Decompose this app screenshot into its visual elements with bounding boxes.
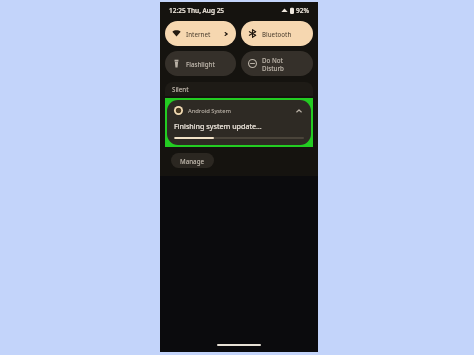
staticText: Flashlight: [186, 60, 215, 68]
button[interactable]: Flashlight: [165, 51, 236, 76]
staticText: Bluetooth: [262, 30, 292, 38]
staticText: 12:25 Thu, Aug 25: [169, 6, 225, 15]
staticText: Internet: [186, 30, 211, 38]
button[interactable]: Do Not Disturb: [241, 51, 313, 76]
staticText: Do Not Disturb: [262, 56, 306, 72]
button[interactable]: Android System: [167, 100, 311, 145]
staticText: 92%: [296, 6, 309, 15]
button[interactable]: Manage: [171, 153, 214, 168]
staticText: Finishing system update…: [174, 121, 262, 131]
button[interactable]: Collapse: [293, 105, 304, 116]
staticText: Manage: [180, 157, 205, 165]
staticText: Android System: [188, 107, 231, 115]
button[interactable]: Internet: [165, 21, 236, 46]
staticText: Silent: [172, 85, 189, 93]
button[interactable]: Bluetooth: [241, 21, 313, 46]
